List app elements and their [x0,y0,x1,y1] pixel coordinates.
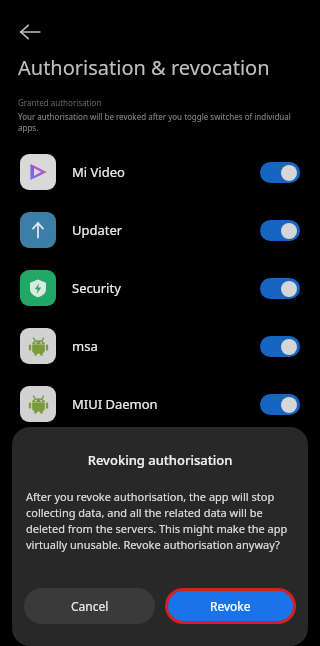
staticText: MIUI Daemon [72,395,158,413]
staticText: After you revoke authorisation, the app … [26,489,294,552]
button[interactable]: Security [0,259,320,317]
button[interactable]: Toggle Security [260,278,300,299]
button[interactable]: Toggle Mi Video [260,162,300,183]
staticText: Revoking authorisation [12,451,308,469]
button[interactable]: Mi Browser [0,433,320,491]
button[interactable]: Mi Video [0,143,320,201]
staticText: Cancel [71,598,109,614]
staticText: Revoke [210,598,251,614]
button[interactable]: Toggle MIUI Daemon [260,394,300,415]
button[interactable]: Revoke [168,591,293,621]
button[interactable]: MIUI Daemon [0,375,320,433]
button[interactable]: Toggle msa [260,336,300,357]
staticText: msa [72,337,98,355]
staticText: Your authorisation will be revoked after… [18,111,310,133]
staticText: Updater [72,221,123,239]
staticText: Authorisation & revocation [18,54,270,81]
button[interactable]: Toggle Updater [260,220,300,241]
staticText: Mi Browser [72,453,141,471]
staticText: Security [72,279,121,297]
button[interactable]: Back [10,12,50,52]
staticText: Mi Video [72,163,125,181]
button[interactable]: msa [0,317,320,375]
button[interactable]: Updater [0,201,320,259]
button[interactable]: Cancel [24,588,155,624]
staticText: Granted authorisation [18,97,102,108]
